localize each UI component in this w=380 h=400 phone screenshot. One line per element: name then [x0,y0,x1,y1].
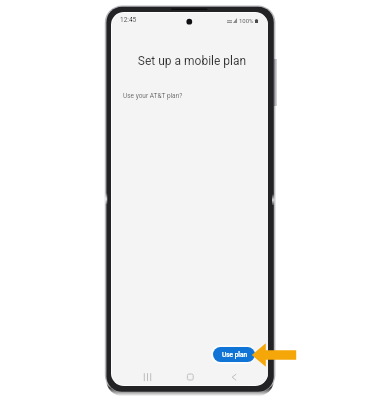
button[interactable]: Back [224,368,244,385]
staticText: Set up a mobile plan [114,54,268,68]
staticText: Use plan [222,351,248,359]
button[interactable]: Home [180,368,200,385]
staticText: 100% [239,17,254,24]
button[interactable]: Use plan [213,347,255,362]
staticText: Use your AT&T plan? [123,92,183,100]
staticText: 12:45 [120,16,137,24]
button[interactable]: Recent apps [138,368,158,385]
